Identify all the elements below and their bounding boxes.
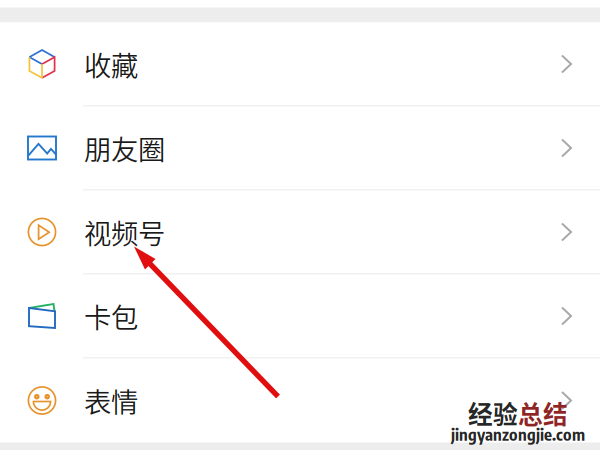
- button[interactable]: 视频号: [0, 190, 600, 274]
- staticText: 收藏: [84, 44, 138, 84]
- button[interactable]: 卡包: [0, 274, 600, 358]
- staticText: 卡包: [84, 296, 138, 336]
- staticText: 经验: [468, 395, 518, 431]
- button[interactable]: 表情: [0, 358, 600, 442]
- staticText: 表情: [84, 381, 138, 420]
- button[interactable]: 收藏: [0, 22, 600, 106]
- button[interactable]: 朋友圈: [0, 106, 600, 190]
- staticText: 视频号: [84, 212, 165, 252]
- staticText: 总结: [518, 395, 568, 431]
- staticText: 朋友圈: [84, 128, 165, 168]
- staticText: jingyanzongjie.com: [451, 424, 585, 444]
